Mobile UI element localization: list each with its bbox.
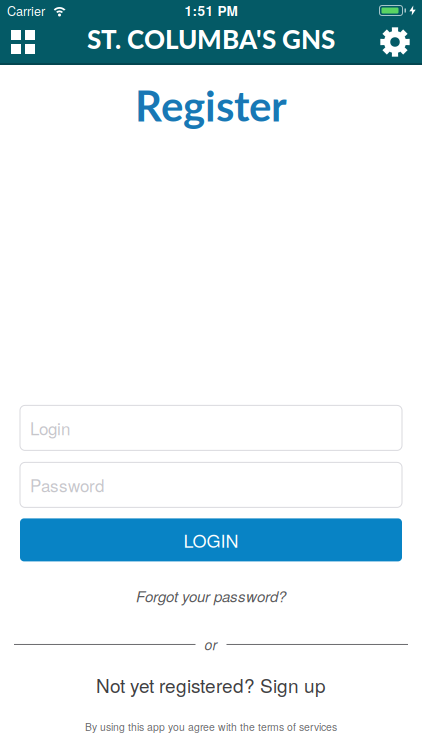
staticText: LOGIN (183, 527, 238, 553)
staticText: Forgot your password? (136, 585, 286, 606)
staticText: Carrier (7, 1, 45, 19)
staticText: By using this app you agree with the ter… (85, 719, 337, 734)
button[interactable]: LOGIN (20, 518, 402, 561)
staticText: Login (30, 416, 70, 440)
staticText: or (204, 634, 217, 654)
staticText: Password (30, 473, 104, 497)
button[interactable]: Password (20, 462, 402, 507)
button[interactable]: Forgot your password? (136, 585, 286, 606)
button[interactable]: Menu (0, 30, 35, 54)
button[interactable]: Not yet registered? Sign up (96, 671, 326, 698)
staticText: 1:51 PM (184, 1, 237, 20)
button[interactable]: Login (20, 405, 402, 450)
staticText: Register (135, 80, 287, 130)
staticText: Not yet registered? Sign up (96, 671, 326, 698)
button[interactable]: Settings (380, 27, 422, 57)
staticText: ST. COLUMBA'S GNS (87, 23, 335, 55)
